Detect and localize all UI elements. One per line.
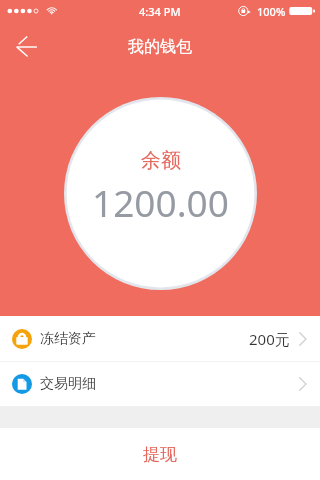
staticText: 提现 <box>143 444 177 465</box>
staticText: 余额 <box>141 148 181 173</box>
button[interactable]: 冻结资产 <box>0 316 320 361</box>
staticText: 100% <box>257 4 286 19</box>
button[interactable]: Back <box>0 24 46 70</box>
button[interactable]: 交易明细 <box>0 362 320 406</box>
staticText: 交易明细 <box>40 375 96 393</box>
staticText: 200元 <box>249 329 290 349</box>
staticText: 4:34 PM <box>139 4 181 19</box>
staticText: 冻结资产 <box>40 330 96 348</box>
staticText: 1200.00 <box>92 177 229 227</box>
button[interactable]: 提现 <box>0 428 320 480</box>
staticText: 我的钱包 <box>128 37 192 57</box>
